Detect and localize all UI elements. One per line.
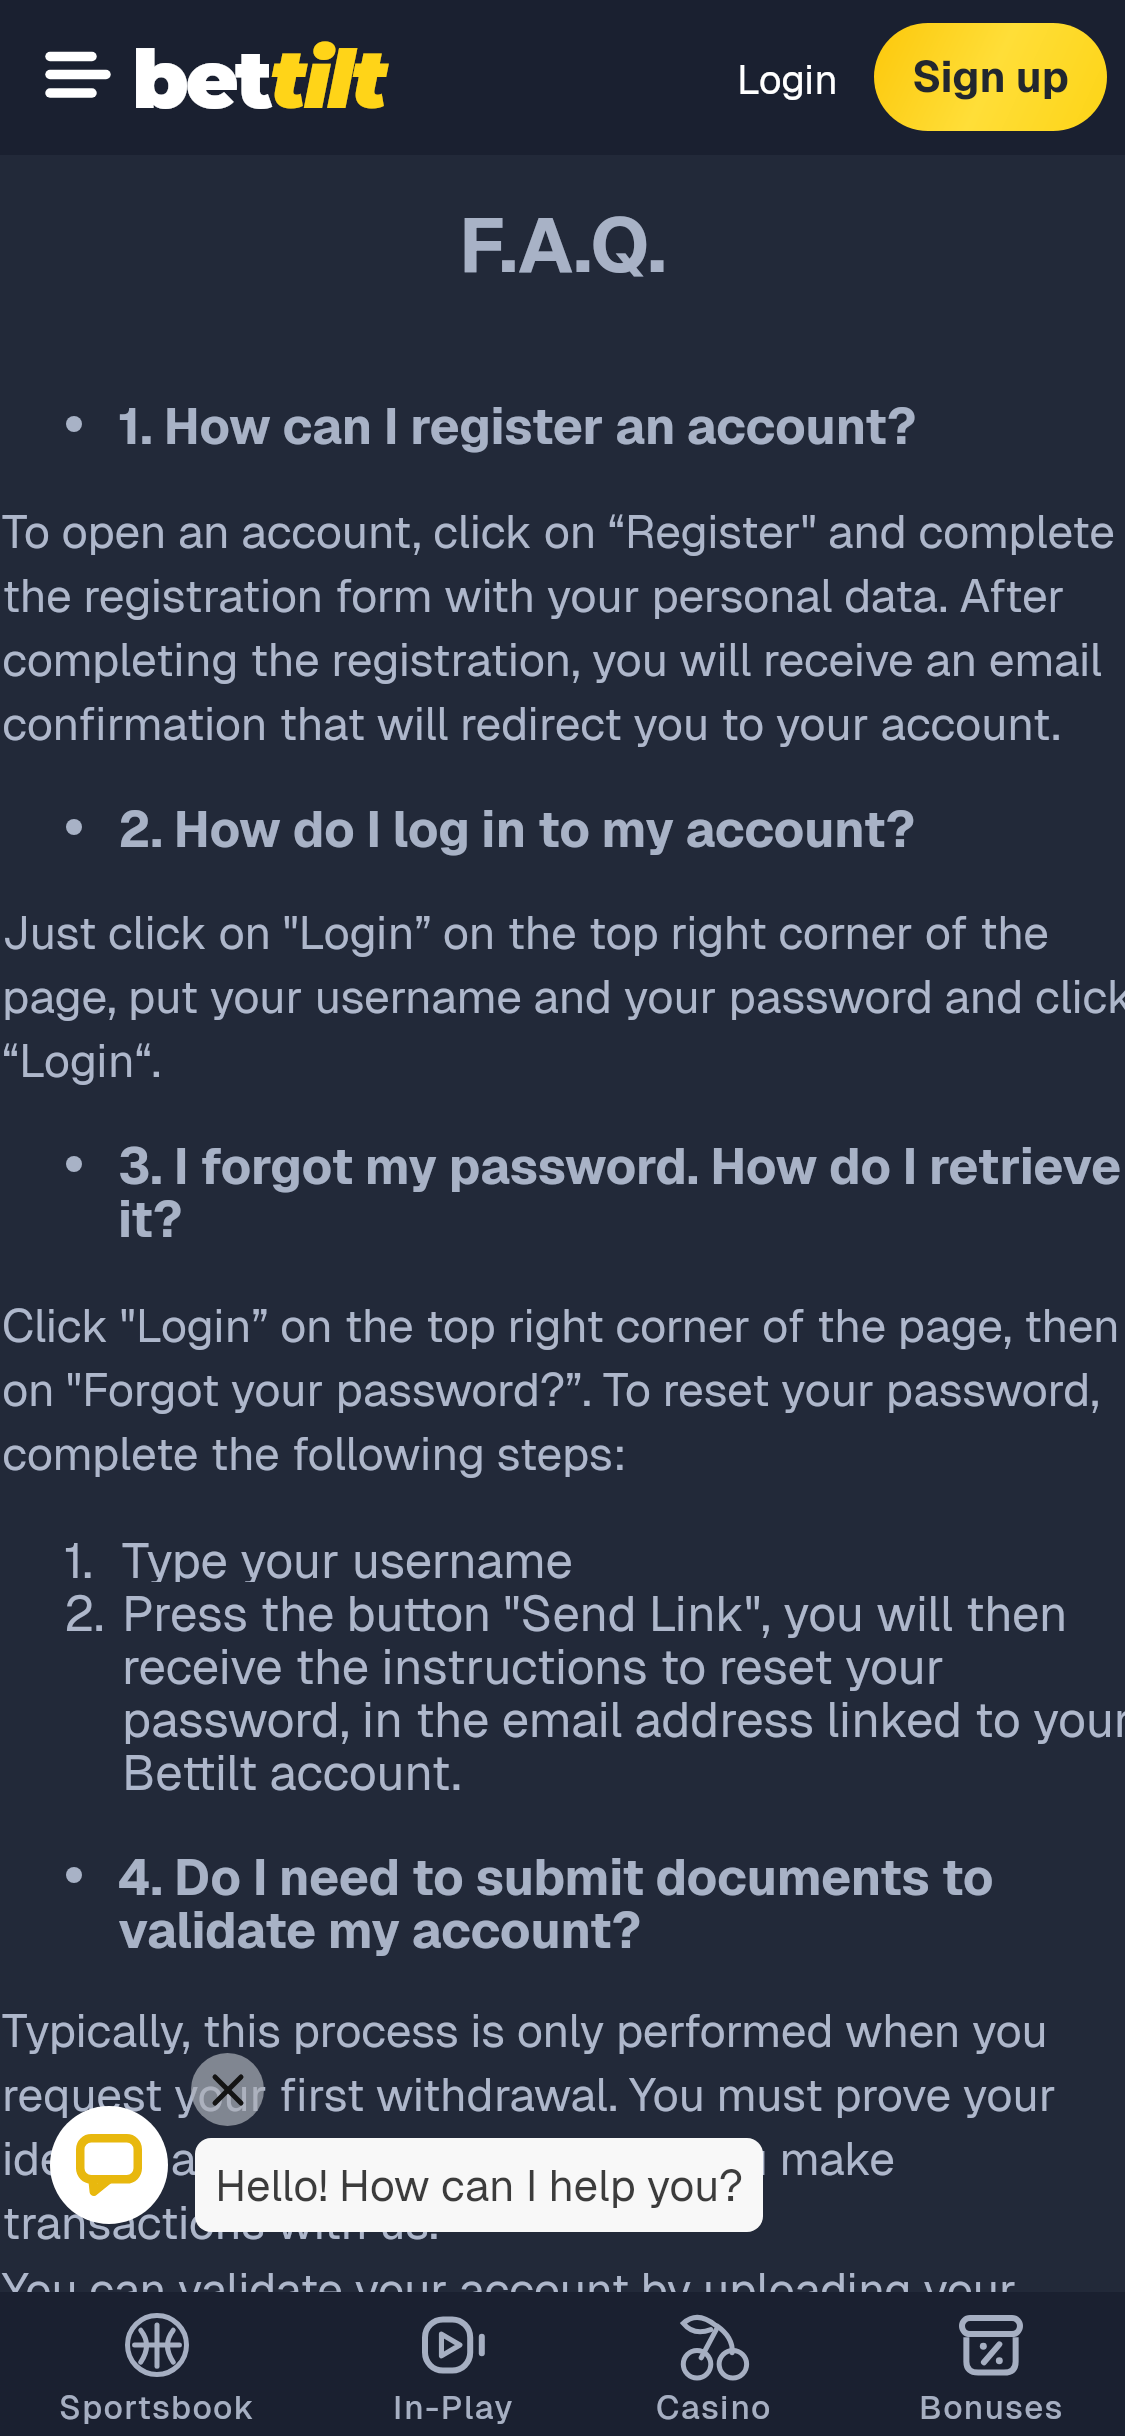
- staticText: Sign up: [912, 49, 1069, 105]
- staticText: 2. How do I log in to my account?: [118, 797, 915, 862]
- staticText: 4. Do I need to submit documents to vali…: [118, 1845, 1125, 1963]
- staticText: Type your username: [122, 1529, 573, 1582]
- staticText: 2.: [64, 1582, 105, 1646]
- button[interactable]: Casino: [589, 2299, 839, 2436]
- staticText: Login: [737, 54, 838, 106]
- staticText: tilt: [270, 30, 386, 129]
- staticText: Press the button "Send Link", you will t…: [122, 1582, 1125, 1804]
- staticText: Hello! How can I help you?: [215, 2157, 744, 2214]
- button[interactable]: Sportsbook: [12, 2299, 302, 2436]
- button[interactable]: In-Play: [320, 2299, 587, 2436]
- staticText: Casino: [656, 2386, 773, 2429]
- staticText: bet: [132, 30, 270, 129]
- staticText: In-Play: [393, 2386, 514, 2429]
- button[interactable]: bet: [132, 30, 386, 129]
- staticText: Just click on "Login” on the top right c…: [2, 903, 1125, 1091]
- button[interactable]: Close chat: [191, 2053, 264, 2126]
- staticText: You can validate your account by uploadi…: [2, 2260, 1125, 2320]
- staticText: 1.: [64, 1529, 93, 1582]
- staticText: F.A.Q.: [0, 195, 1125, 295]
- staticText: Typically, this process is only performe…: [2, 2001, 1125, 2253]
- staticText: 1. How can I register an account?: [118, 394, 917, 459]
- button[interactable]: Login: [713, 32, 862, 128]
- button[interactable]: Open chat: [50, 2106, 168, 2224]
- staticText: Bonuses: [919, 2386, 1064, 2429]
- button[interactable]: Bonuses: [841, 2299, 1125, 2436]
- staticText: Click "Login” on the top right corner of…: [2, 1296, 1125, 1484]
- button[interactable]: Hello! How can I help you?: [195, 2138, 763, 2232]
- button[interactable]: Sign up: [874, 23, 1107, 131]
- staticText: Sportsbook: [59, 2386, 256, 2429]
- button[interactable]: Menu: [24, 32, 124, 124]
- staticText: To open an account, click on “Register" …: [2, 502, 1125, 754]
- staticText: 3. I forgot my password. How do I retrie…: [118, 1134, 1125, 1252]
